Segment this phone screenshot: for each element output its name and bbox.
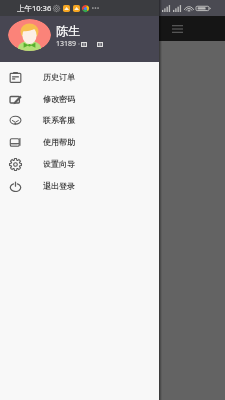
staticText: 设置向导 [43,159,75,169]
staticText: 13189 [56,39,77,49]
button[interactable]: 设置向导 [0,153,159,175]
staticText: 修改密码 [43,94,75,104]
staticText: 退出登录 [43,181,75,191]
staticText: 上午10:36 [17,3,52,13]
button[interactable]: Open navigation drawer [168,20,186,38]
button[interactable]: 退出登录 [0,175,159,197]
staticText: 历史订单 [43,72,75,82]
button[interactable]: 使用帮助 [0,131,159,153]
staticText: 使用帮助 [43,137,75,147]
button[interactable]: 联系客服 [0,109,159,131]
button[interactable]: 修改密码 [0,88,159,110]
button[interactable]: 历史订单 [0,66,159,88]
staticText: 联系客服 [43,115,75,125]
staticText: 陈生 [56,23,80,38]
